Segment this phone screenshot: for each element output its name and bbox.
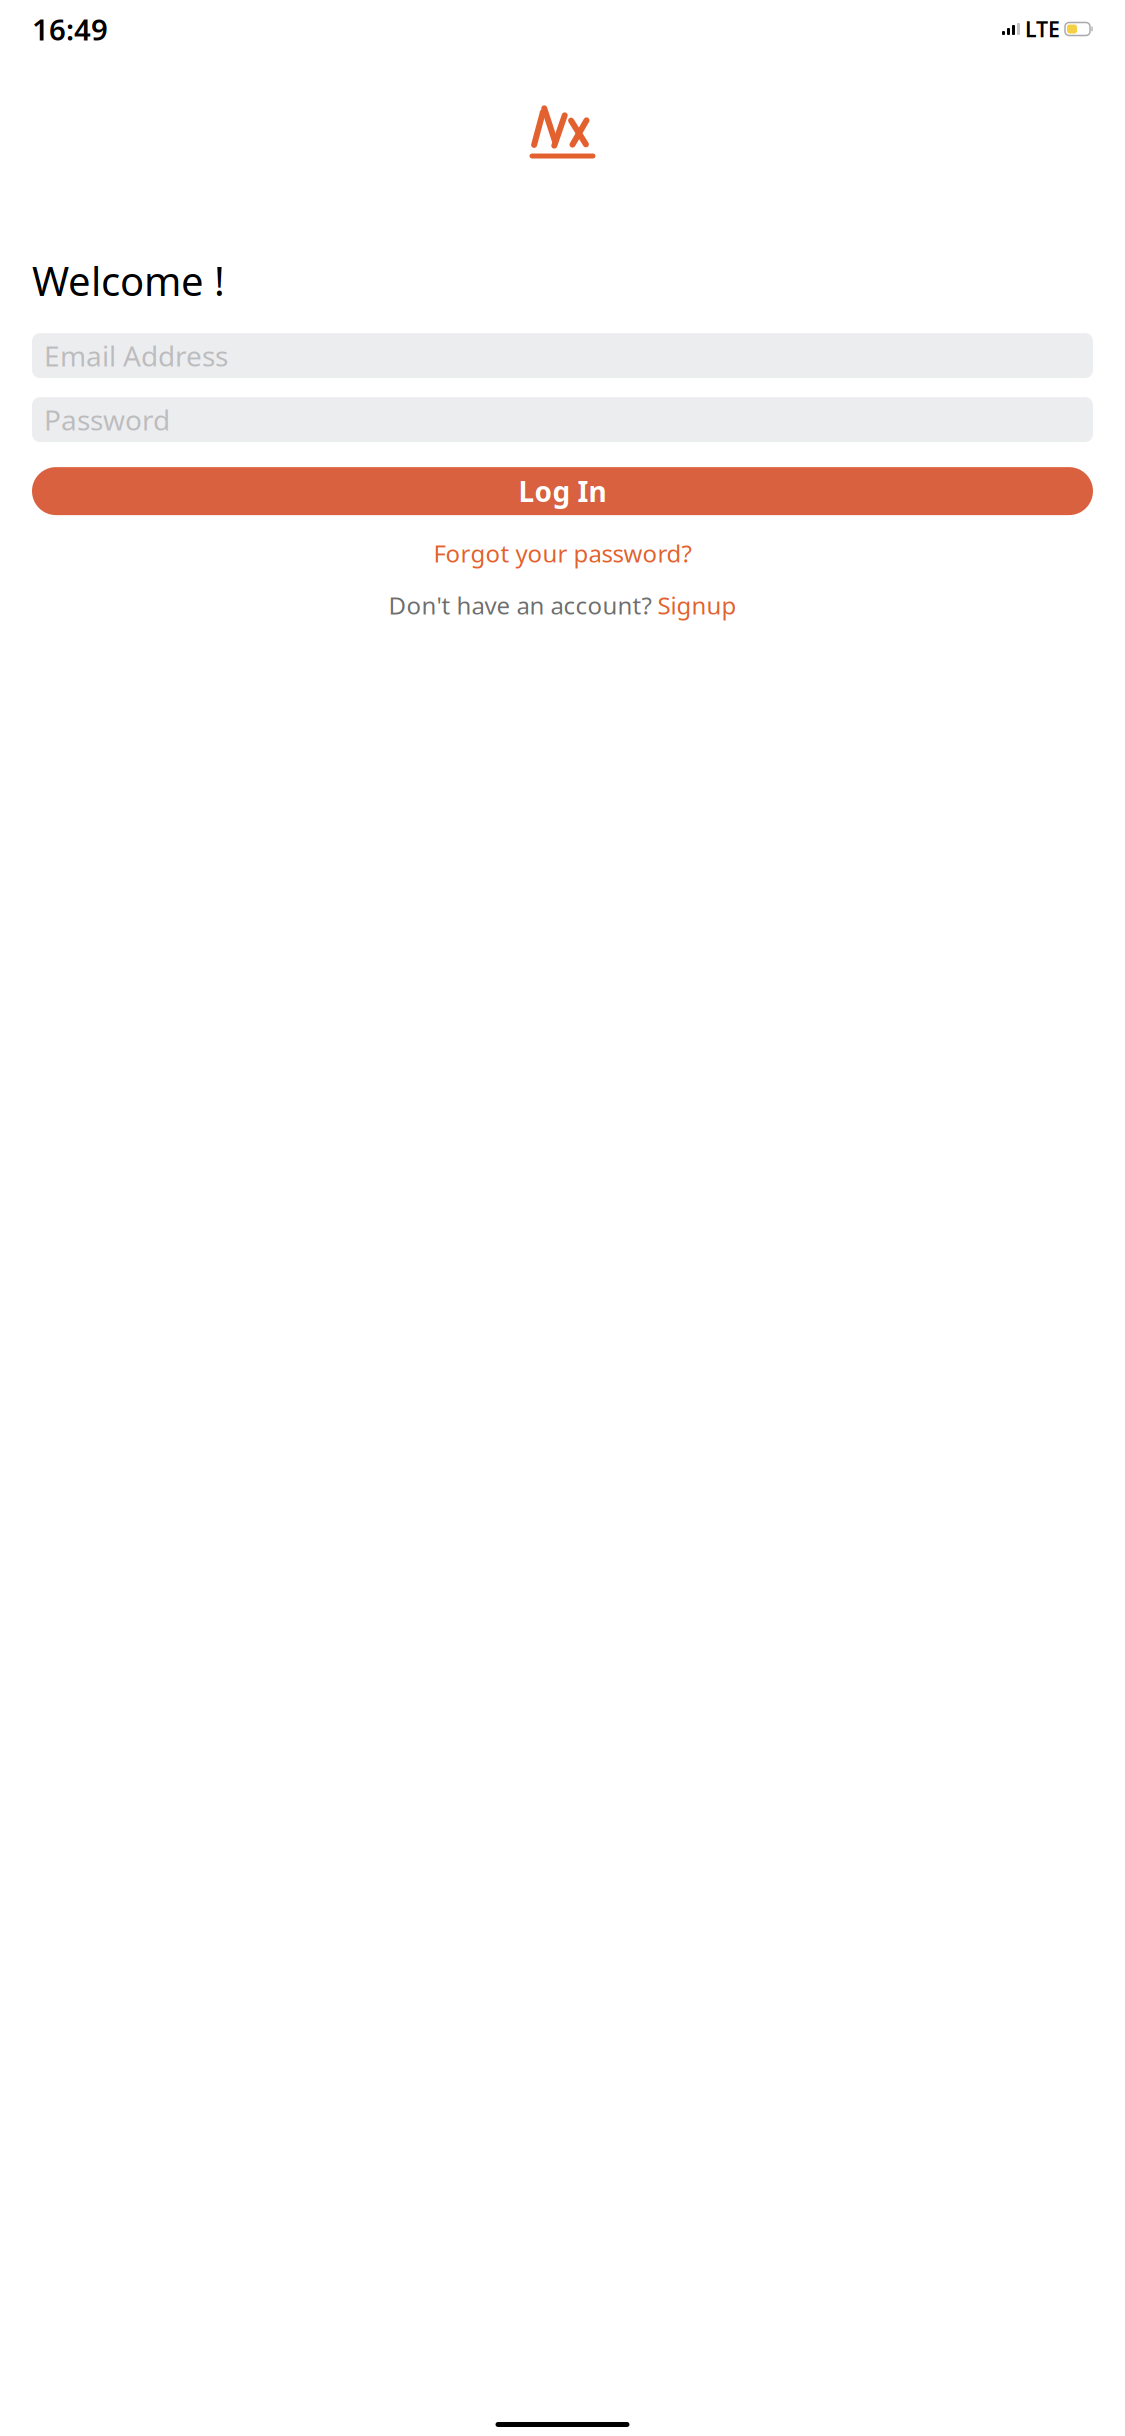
staticText: Don't have an account? — [388, 589, 657, 621]
staticText: 16:49 — [32, 9, 108, 48]
staticText: Password — [44, 401, 170, 438]
staticText: Log In — [518, 472, 606, 510]
button[interactable]: Password — [32, 397, 1093, 442]
button[interactable]: Log In — [32, 467, 1093, 515]
staticText: Signup — [657, 589, 736, 621]
button[interactable]: Email Address — [32, 333, 1093, 378]
staticText: Forgot your password? — [433, 537, 691, 569]
staticText: LTE — [1025, 15, 1060, 43]
button[interactable]: Signup — [657, 589, 736, 621]
staticText: Welcome ! — [32, 254, 225, 307]
staticText: Email Address — [44, 337, 228, 374]
button[interactable]: Forgot your password? — [32, 539, 1093, 567]
